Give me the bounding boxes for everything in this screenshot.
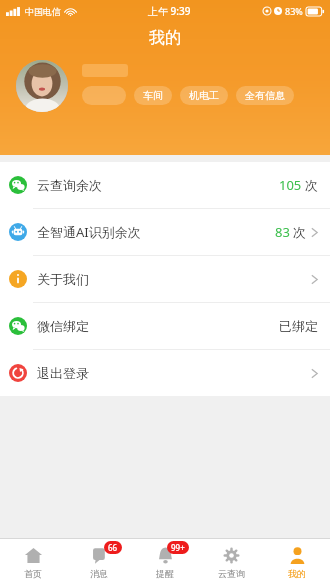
button[interactable]: 车间 [134,86,172,105]
button[interactable]: Profile photo [16,60,68,112]
staticText: 提醒 [156,568,174,579]
staticText: 云查询余次 [37,177,102,193]
staticText: 退出登录 [37,365,89,381]
staticText: 我的 [288,568,306,579]
button[interactable]: 全有信息 [236,86,294,105]
staticText: 中国电信 [25,6,61,17]
button[interactable]: 微信绑定 [0,303,330,349]
staticText: 关于我们 [37,271,89,287]
staticText: 首页 [24,568,42,579]
staticText: 机电工 [189,89,219,102]
staticText: 车间 [143,89,163,102]
button[interactable]: 退出登录 [0,350,330,396]
staticText: 云查询 [218,568,245,579]
staticText: 全智通AI识别余次 [37,223,141,241]
staticText: 66 [108,542,118,553]
button[interactable]: 机电工 [180,86,228,105]
button[interactable]: 云查询 [198,539,264,586]
button[interactable]: Tag [82,86,126,105]
button[interactable]: 云查询余次 [0,162,330,208]
staticText: 已绑定 [279,318,318,334]
staticText: 99+ [171,542,185,553]
staticText: 83 [275,223,290,241]
staticText: 我的 [0,28,330,48]
staticText: 微信绑定 [37,318,89,334]
staticText: 上午 9:39 [148,4,191,18]
button[interactable]: 66 [66,539,132,586]
staticText: 83% [285,5,303,17]
button[interactable]: 99+ [132,539,198,586]
button[interactable]: 我的 [264,539,330,586]
staticText: 全有信息 [245,89,285,102]
button[interactable]: 全智通AI识别余次 [0,209,330,255]
button[interactable]: 关于我们 [0,256,330,302]
staticText: 105 [279,176,302,194]
staticText: 消息 [90,568,108,579]
button[interactable]: 首页 [0,539,66,586]
staticText: 次 [293,224,306,240]
staticText: 次 [305,177,318,193]
